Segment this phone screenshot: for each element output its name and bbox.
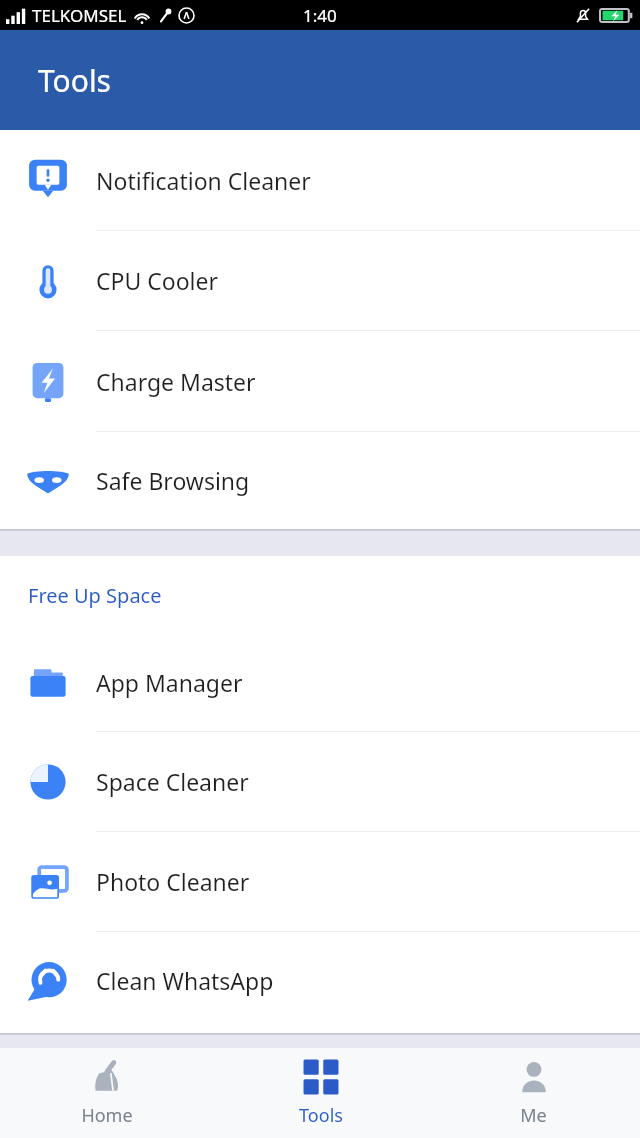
staticText: Charge Master — [96, 366, 256, 397]
button[interactable]: Me — [427, 1048, 640, 1138]
button[interactable]: Space Cleaner — [0, 732, 640, 831]
staticText: Free Up Space — [28, 582, 162, 609]
staticText: Tools — [299, 1103, 343, 1128]
staticText: Space Cleaner — [96, 766, 249, 797]
button[interactable]: Tools — [214, 1048, 427, 1138]
staticText: Me — [520, 1103, 547, 1128]
staticText: 1:40 — [303, 4, 337, 27]
button[interactable]: Notification Cleaner — [0, 130, 640, 230]
button[interactable]: Charge Master — [0, 331, 640, 431]
staticText: Safe Browsing — [96, 465, 250, 496]
button[interactable]: App Manager — [0, 634, 640, 731]
staticText: CPU Cooler — [96, 265, 219, 296]
staticText: Home — [81, 1103, 133, 1128]
button[interactable]: CPU Cooler — [0, 231, 640, 330]
staticText: Photo Cleaner — [96, 866, 250, 897]
staticText: Notification Cleaner — [96, 165, 311, 196]
staticText: App Manager — [96, 667, 243, 698]
button[interactable]: Safe Browsing — [0, 432, 640, 529]
staticText: Tools — [38, 60, 111, 101]
button[interactable]: Home — [0, 1048, 214, 1138]
staticText: TELKOMSEL — [32, 4, 127, 27]
button[interactable]: Clean WhatsApp — [0, 932, 640, 1029]
button[interactable]: Photo Cleaner — [0, 832, 640, 931]
staticText: Clean WhatsApp — [96, 965, 274, 996]
